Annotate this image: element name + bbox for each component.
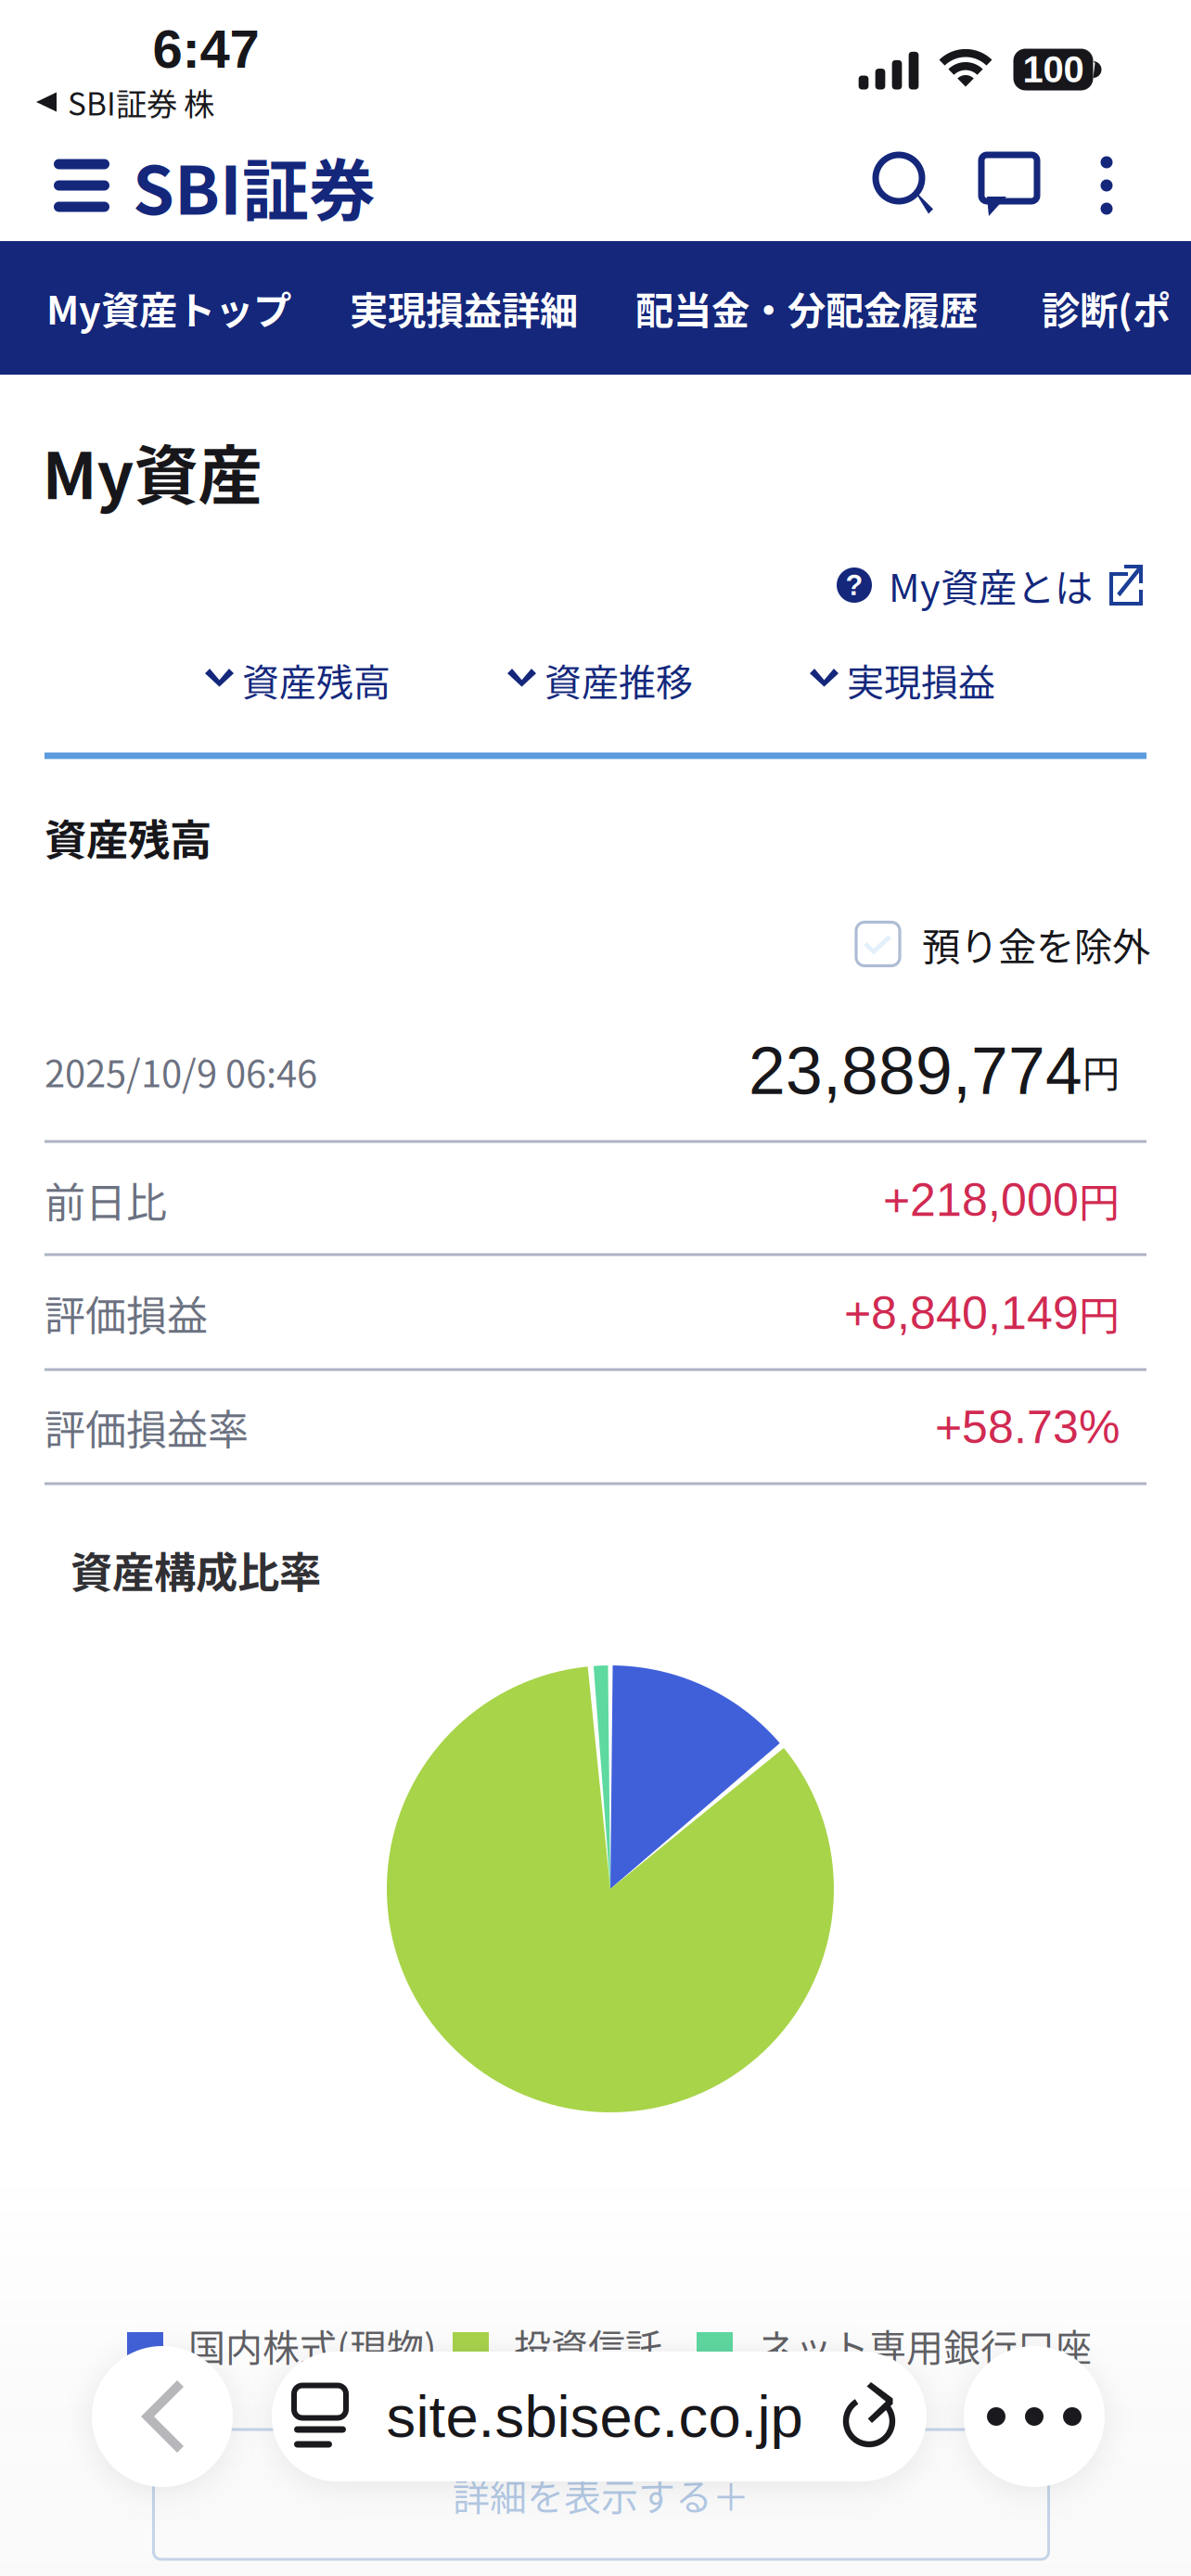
staticText: 円	[1079, 1170, 1120, 1229]
staticText: 資産推移	[544, 653, 693, 706]
staticText: SBI証券 株	[68, 80, 214, 124]
button[interactable]: 詳細を表示する＋	[154, 2429, 1049, 2559]
staticText: 100	[1023, 49, 1084, 90]
button[interactable]: Messages	[962, 130, 1058, 241]
staticText: 前日比	[45, 1170, 167, 1229]
staticText: My資産トップ	[46, 280, 291, 336]
staticText: +58.73%	[935, 1401, 1120, 1453]
staticText: 評価損益	[45, 1283, 208, 1343]
staticText: 23,889,774	[749, 1034, 1082, 1108]
staticText: 資産残高	[45, 807, 211, 868]
button[interactable]: Back	[92, 2346, 233, 2487]
button[interactable]: 配当金・分配金履歴	[635, 241, 1041, 375]
staticText: 円	[1079, 1283, 1120, 1343]
button[interactable]: 実現損益詳細	[350, 241, 635, 375]
staticText: ?	[845, 569, 863, 601]
button[interactable]: My資産トップ	[46, 241, 341, 375]
staticText: 実現損益	[847, 653, 995, 706]
button[interactable]: Reload	[837, 2372, 903, 2461]
button[interactable]: 実現損益	[810, 641, 995, 719]
staticText: 実現損益詳細	[350, 280, 578, 336]
button[interactable]: ?	[837, 549, 1143, 621]
staticText: SBI証券	[133, 137, 376, 234]
staticText: 円	[1082, 1044, 1120, 1098]
button[interactable]: 預り金を除外	[856, 905, 1150, 983]
staticText: My資産	[42, 425, 262, 518]
button[interactable]: Back to SBI証券 株	[36, 83, 214, 121]
staticText: 投資信託	[489, 2318, 662, 2372]
staticText: ネット専用銀行口座	[733, 2318, 1092, 2372]
staticText: 評価損益率	[45, 1398, 249, 1457]
button[interactable]: Search	[856, 130, 953, 241]
staticText: 6:47	[153, 19, 259, 79]
button[interactable]: 資産推移	[507, 641, 693, 719]
staticText: 資産構成比率	[70, 1539, 321, 1600]
button[interactable]: More	[964, 2346, 1105, 2487]
staticText: +8,840,149	[844, 1287, 1079, 1339]
staticText: site.sbisec.co.jp	[386, 2384, 803, 2449]
button[interactable]: Menu	[35, 130, 128, 241]
staticText: 資産残高	[242, 653, 391, 706]
button[interactable]: 診断(ポ	[1042, 241, 1191, 375]
staticText: 詳細を表示する＋	[453, 2468, 749, 2521]
button[interactable]: 資産残高	[205, 641, 391, 719]
staticText: 診断(ポ	[1042, 280, 1171, 336]
staticText: 配当金・分配金履歴	[635, 280, 978, 336]
staticText: +218,000	[883, 1174, 1079, 1226]
staticText: 預り金を除外	[922, 916, 1150, 972]
button[interactable]: More options	[1064, 130, 1149, 241]
staticText: 2025/10/9 06:46	[45, 1044, 317, 1098]
staticText: 国内株式(現物)	[163, 2318, 437, 2372]
staticText: My資産とは	[872, 557, 1109, 613]
